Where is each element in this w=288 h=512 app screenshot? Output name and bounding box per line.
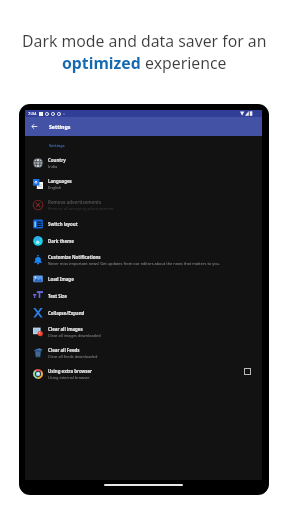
button[interactable]: Dark theme <box>25 232 262 249</box>
button[interactable]: Clear all Feeds <box>25 342 262 363</box>
staticText: Clear all Feeds <box>48 347 80 353</box>
staticText: Switch layout <box>48 221 78 227</box>
staticText: Clear all images <box>48 326 83 332</box>
staticText: Using internal browser <box>48 375 90 380</box>
button[interactable]: Using extra browser <box>25 363 262 384</box>
button[interactable]: Load Image <box>25 270 262 287</box>
staticText: Collapse/Expand <box>48 310 85 316</box>
staticText: Dark mode and data saver for an <box>22 30 267 52</box>
staticText: Settings <box>49 143 65 148</box>
staticText: optimized <box>62 52 141 74</box>
staticText: English <box>48 185 62 190</box>
button[interactable]: Collapse/Expand <box>25 304 262 321</box>
staticText: Languages <box>48 178 72 184</box>
staticText: Country <box>48 157 66 163</box>
button[interactable]: Back <box>25 117 44 136</box>
staticText: Clear all feeds downloaded <box>48 354 98 359</box>
button[interactable]: Languages <box>25 173 262 194</box>
staticText: Clear all images downloaded <box>48 333 101 338</box>
staticText: Text Size <box>48 293 67 299</box>
button[interactable]: Remove advertisements <box>25 194 262 215</box>
staticText: Dark theme <box>48 238 74 244</box>
staticText: 7:34 <box>28 111 37 117</box>
staticText: Settings <box>49 123 71 130</box>
staticText: Never miss important news! Get updates f… <box>48 261 220 266</box>
staticText: India <box>48 164 58 169</box>
button[interactable]: Clear all images <box>25 321 262 342</box>
staticText: Remove all annoying advertisement <box>48 206 114 211</box>
button[interactable]: Switch layout <box>25 215 262 232</box>
button[interactable]: Customize Notifications <box>25 249 262 270</box>
button[interactable]: Text Size <box>25 287 262 304</box>
staticText: Remove advertisements <box>48 199 102 205</box>
button[interactable]: Country <box>25 152 262 173</box>
staticText: Using extra browser <box>48 368 93 374</box>
staticText: Load Image <box>48 276 74 282</box>
staticText: experience <box>141 52 227 74</box>
staticText: Customize Notifications <box>48 254 101 260</box>
